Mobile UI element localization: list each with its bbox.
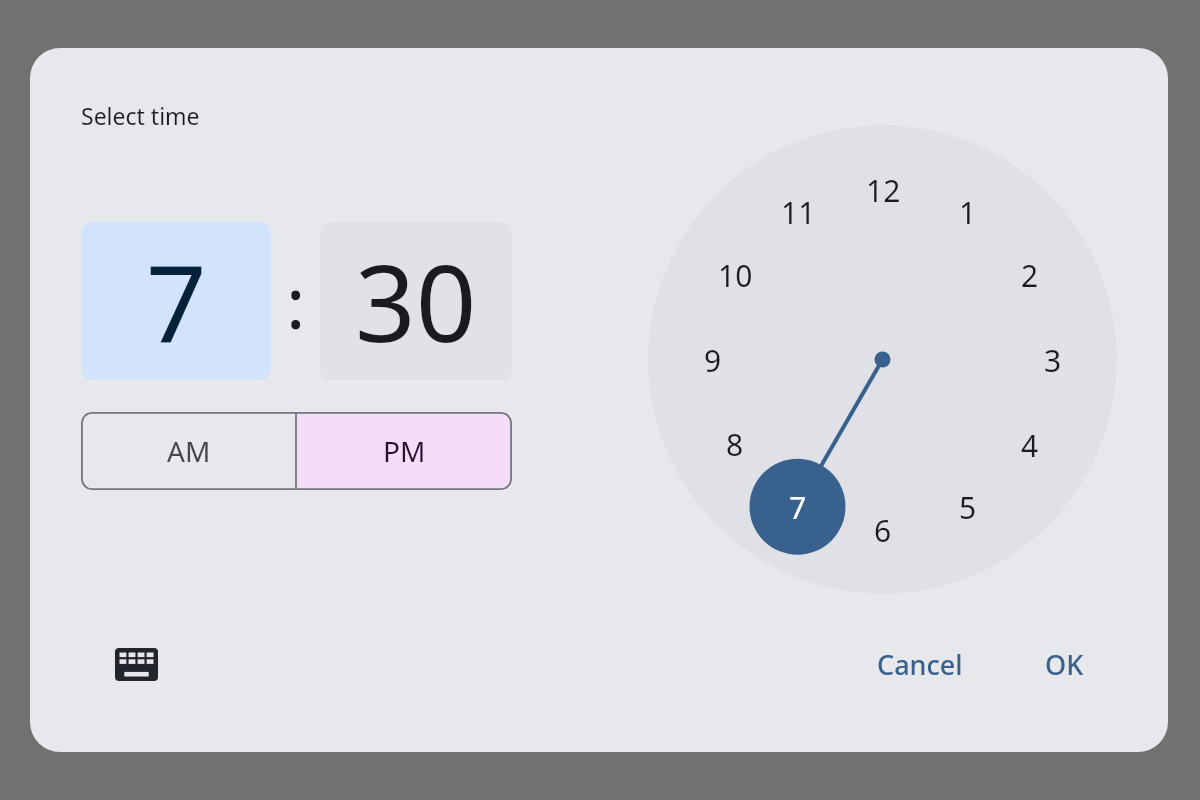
staticText: 7 — [146, 229, 207, 373]
button[interactable]: 30 — [320, 222, 512, 380]
staticText: 12 — [866, 170, 901, 211]
button[interactable]: Switch to text input — [100, 628, 172, 700]
staticText: 9 — [704, 340, 722, 381]
staticText: Cancel — [877, 646, 963, 683]
button[interactable]: AM — [81, 412, 296, 490]
button[interactable]: OK — [1012, 628, 1116, 700]
staticText: 5 — [959, 487, 977, 528]
button[interactable]: Cancel — [852, 628, 988, 700]
staticText: AM — [167, 432, 211, 470]
staticText: 6 — [874, 510, 892, 551]
staticText: : — [286, 252, 306, 350]
staticText: 3 — [1044, 340, 1062, 381]
button[interactable]: 1 — [648, 125, 1117, 594]
button[interactable]: 7 — [81, 222, 271, 380]
staticText: OK — [1045, 646, 1084, 683]
staticText: 7 — [789, 487, 807, 528]
staticText: 4 — [1021, 425, 1039, 466]
staticText: 11 — [781, 192, 816, 233]
staticText: 10 — [718, 255, 753, 296]
staticText: 8 — [726, 424, 744, 465]
button[interactable]: PM — [296, 412, 512, 490]
staticText: PM — [383, 432, 426, 470]
staticText: 30 — [355, 229, 477, 373]
staticText: 2 — [1021, 255, 1039, 296]
staticText: Select time — [81, 100, 200, 131]
staticText: 1 — [959, 192, 977, 233]
